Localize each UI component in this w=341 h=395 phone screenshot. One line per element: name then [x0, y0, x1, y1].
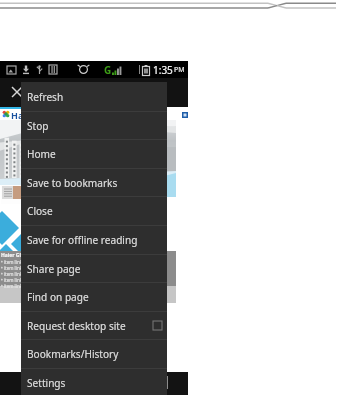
button[interactable]: Settings [21, 368, 167, 395]
staticText: • item link [1, 259, 23, 265]
staticText: Close [27, 204, 53, 218]
button[interactable]: Request desktop site [21, 311, 167, 340]
staticText: • item link [1, 277, 23, 283]
staticText: G [104, 63, 112, 77]
button[interactable]: Save for offline reading [21, 225, 167, 254]
button[interactable]: Save to bookmarks [21, 168, 167, 197]
staticText: Haier [11, 109, 36, 121]
button[interactable]: Refresh [21, 82, 167, 111]
staticText: Stop [27, 119, 49, 133]
staticText: Save to bookmarks [27, 176, 118, 190]
staticText: Haier Global [1, 252, 32, 259]
staticText: Share page [27, 262, 81, 276]
staticText: 1:35 [153, 63, 173, 77]
staticText: • item link [1, 283, 23, 289]
button[interactable]: Share page [21, 254, 167, 283]
button[interactable]: Close [21, 196, 167, 225]
staticText: Save for offline reading [27, 233, 138, 247]
button[interactable]: Close tab [11, 86, 23, 98]
staticText: • item link [1, 271, 23, 277]
staticText: PM [174, 65, 185, 75]
staticText: Bookmarks/History [27, 347, 119, 361]
staticText: Home [27, 147, 56, 161]
button[interactable]: Bookmarks/History [21, 339, 167, 368]
staticText: Find on page [27, 290, 89, 304]
staticText: Settings [27, 376, 66, 390]
staticText: Refresh [27, 90, 64, 104]
staticText: Request desktop site [27, 319, 126, 333]
button[interactable]: Stop [21, 111, 167, 140]
staticText: • item link [1, 265, 23, 271]
button[interactable]: Find on page [21, 282, 167, 311]
button[interactable]: Home [21, 139, 167, 168]
